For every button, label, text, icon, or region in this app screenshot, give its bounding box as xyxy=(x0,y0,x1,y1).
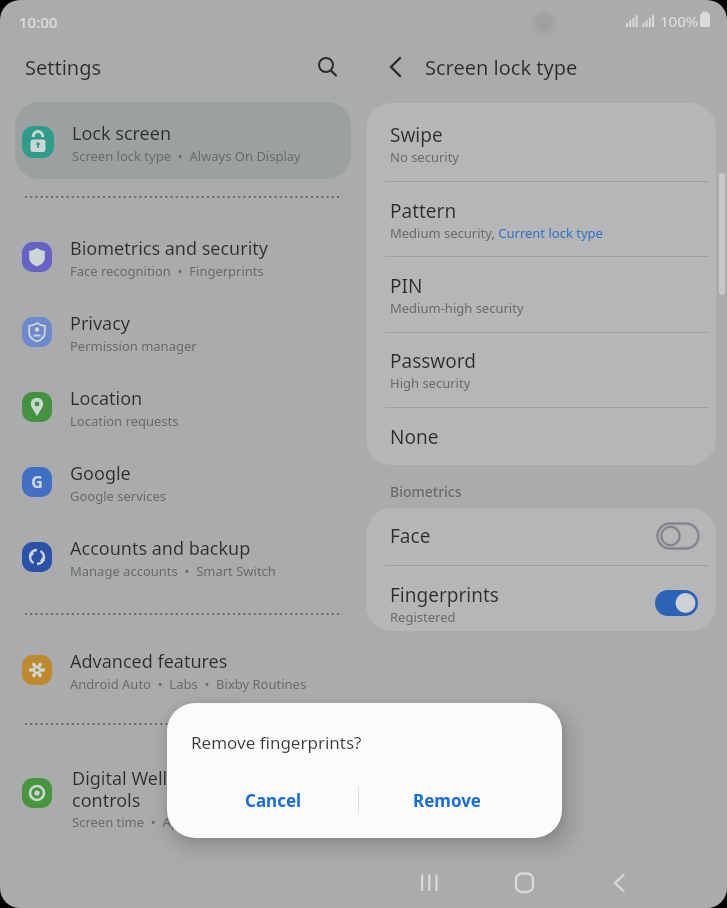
staticText: High security xyxy=(390,374,471,392)
staticText: G xyxy=(31,471,43,493)
staticText: 10:00 xyxy=(19,12,58,32)
staticText: Privacy xyxy=(70,311,131,336)
button[interactable] xyxy=(15,370,351,444)
staticText: Biometrics and security xyxy=(70,236,268,261)
staticText: None xyxy=(390,424,439,450)
button[interactable] xyxy=(15,756,351,836)
staticText: Accounts and backup xyxy=(70,536,251,561)
button[interactable] xyxy=(15,633,351,707)
button[interactable] xyxy=(366,508,716,565)
button[interactable] xyxy=(378,49,414,85)
staticText: Password xyxy=(390,348,476,374)
button[interactable] xyxy=(502,861,546,905)
button[interactable] xyxy=(366,181,716,256)
button[interactable]: Remove xyxy=(377,777,517,823)
staticText: 100% xyxy=(660,11,699,31)
staticText: Swipe xyxy=(390,122,443,148)
staticText: Cancel xyxy=(245,789,302,812)
staticText: Settings xyxy=(25,54,102,81)
button[interactable] xyxy=(366,407,716,465)
staticText: Face recognition • Fingerprints xyxy=(70,262,264,280)
button[interactable] xyxy=(597,861,641,905)
button[interactable] xyxy=(15,520,351,594)
button[interactable] xyxy=(407,861,451,905)
button[interactable] xyxy=(366,565,716,631)
staticText: Advanced features xyxy=(70,649,228,674)
button[interactable] xyxy=(366,332,716,407)
staticText: PIN xyxy=(390,273,423,299)
staticText: Lock screen xyxy=(72,121,172,146)
staticText: Screen time • App timers • Bedtime xyxy=(72,813,300,831)
button[interactable] xyxy=(366,256,716,332)
staticText: Google xyxy=(70,461,131,486)
staticText: Fingerprints xyxy=(390,582,499,608)
button[interactable] xyxy=(15,220,351,294)
staticText: No security xyxy=(390,148,460,166)
staticText: Location xyxy=(70,386,143,411)
button[interactable] xyxy=(15,102,351,179)
staticText: Screen lock type • Always On Display xyxy=(72,147,301,165)
staticText: Biometrics xyxy=(390,482,462,501)
button[interactable]: Cancel xyxy=(203,777,343,823)
button[interactable] xyxy=(310,50,346,86)
staticText: Medium-high security xyxy=(390,299,524,317)
staticText: Permission manager xyxy=(70,337,197,355)
staticText: Remove xyxy=(413,789,482,812)
staticText: Screen lock type xyxy=(425,54,578,81)
button[interactable] xyxy=(15,295,351,369)
staticText: controls xyxy=(72,788,141,813)
staticText: Digital Wellbeing and parental xyxy=(72,766,328,791)
staticText: Manage accounts • Smart Switch xyxy=(70,562,276,580)
staticText: Location requests xyxy=(70,412,179,430)
staticText: Registered xyxy=(390,608,456,626)
staticText: Pattern xyxy=(390,198,457,224)
button[interactable] xyxy=(366,103,716,181)
staticText: Android Auto • Labs • Bixby Routines xyxy=(70,675,307,693)
staticText: Google services xyxy=(70,487,166,505)
staticText: Face xyxy=(390,523,431,549)
staticText: Medium security, Current lock type xyxy=(390,224,603,242)
staticText: Remove fingerprints? xyxy=(191,731,362,754)
button[interactable] xyxy=(15,445,351,519)
